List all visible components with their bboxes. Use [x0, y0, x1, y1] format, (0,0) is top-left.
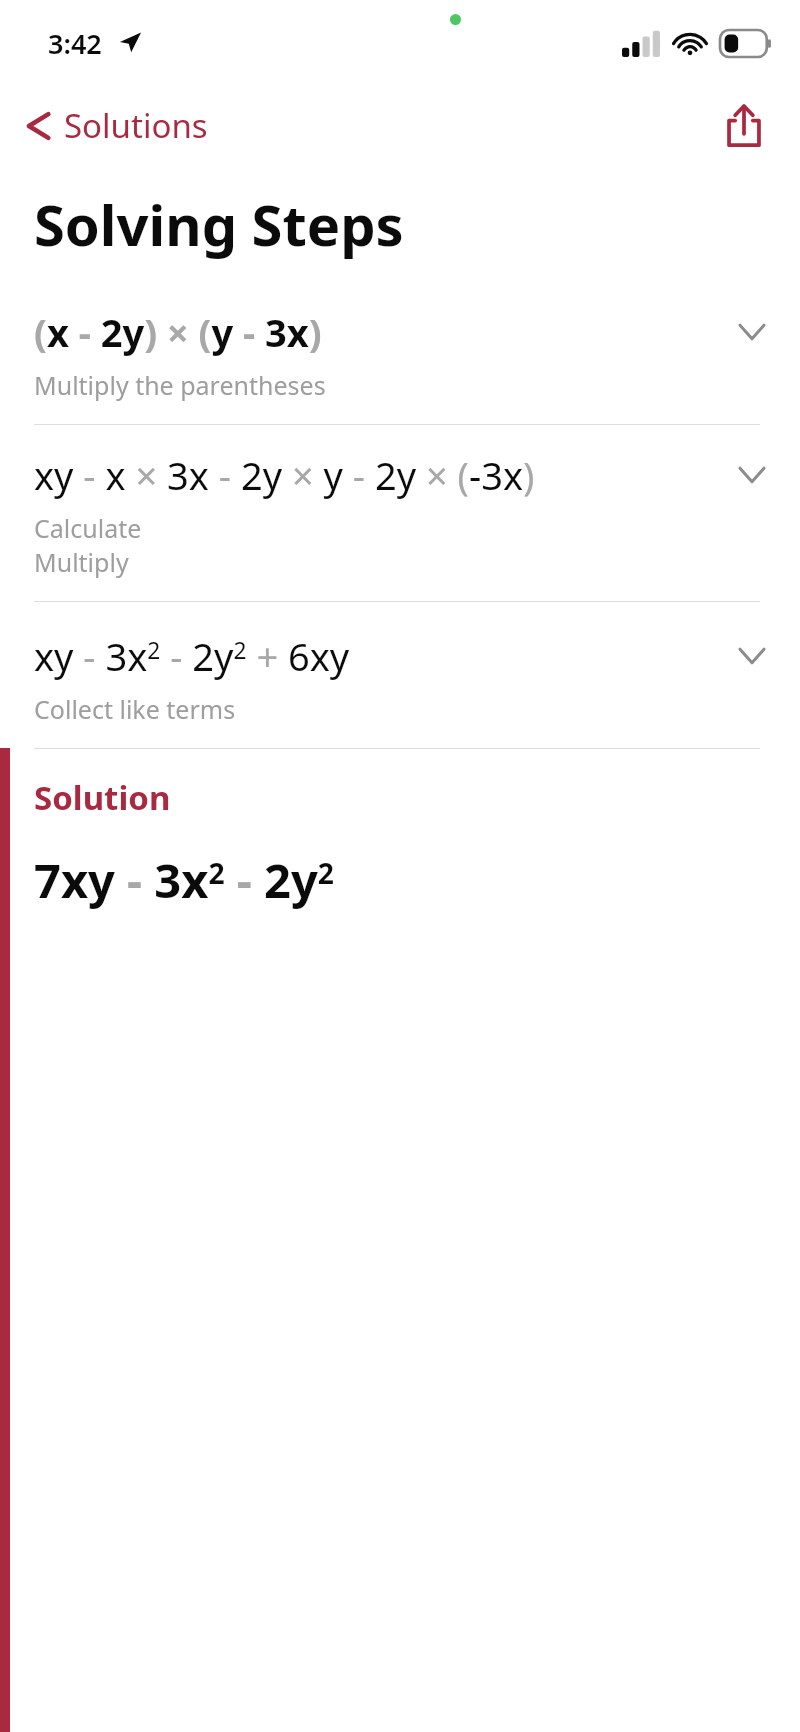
staticText: (x - 2y) × (y - 3x): [34, 306, 322, 358]
staticText: Multiply the parentheses: [34, 368, 326, 402]
staticText: 7xy - 3x2 - 2y2: [34, 848, 334, 912]
button[interactable]: Share: [714, 95, 774, 155]
staticText: 3:42: [48, 25, 102, 62]
staticText: Calculate: [34, 511, 142, 545]
staticText: Collect like terms: [34, 692, 236, 726]
button[interactable]: xy - x × 3x - 2y × y - 2y × (-3x): [0, 425, 800, 601]
staticText: xy - 3x2 - 2y2 + 6xy: [34, 630, 350, 682]
button[interactable]: (x - 2y) × (y - 3x): [0, 298, 800, 424]
button[interactable]: Solutions: [14, 103, 208, 148]
button[interactable]: xy - 3x2 - 2y2 + 6xy: [0, 602, 800, 748]
staticText: Solving Steps: [34, 186, 404, 262]
staticText: Solution: [34, 775, 171, 820]
staticText: xy - x × 3x - 2y × y - 2y × (-3x): [34, 449, 535, 501]
staticText: Multiply: [34, 545, 129, 579]
staticText: Solutions: [64, 103, 208, 148]
